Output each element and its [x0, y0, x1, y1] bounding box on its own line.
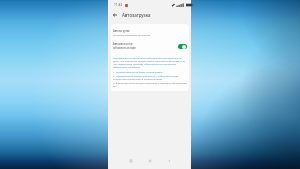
staticText: Автозагрузка [113, 29, 130, 33]
staticText: 2. Обновления и связанные иначе, с собой… [113, 74, 187, 80]
staticText: 3. В функции загрузка для некоторого сце… [113, 81, 187, 87]
button[interactable]: Back [163, 155, 174, 166]
button[interactable]: Автозагрузка [113, 29, 187, 37]
staticText: 1. Сетевая версия не будет использовать. [113, 70, 164, 73]
staticText: 11:43 [114, 3, 123, 7]
staticText: Приложения из заголовков обновления для … [113, 56, 187, 68]
button[interactable]: Home [144, 155, 155, 166]
staticText: Настройки приложений автозапуска [113, 34, 151, 37]
button[interactable]: Автоматически обновлять исходн [113, 42, 187, 50]
staticText: Автоматически обновлять исходн [113, 42, 178, 50]
button[interactable]: Back [110, 10, 120, 20]
staticText: Автозагрузка [122, 12, 151, 18]
button[interactable]: Recent apps [125, 155, 136, 166]
